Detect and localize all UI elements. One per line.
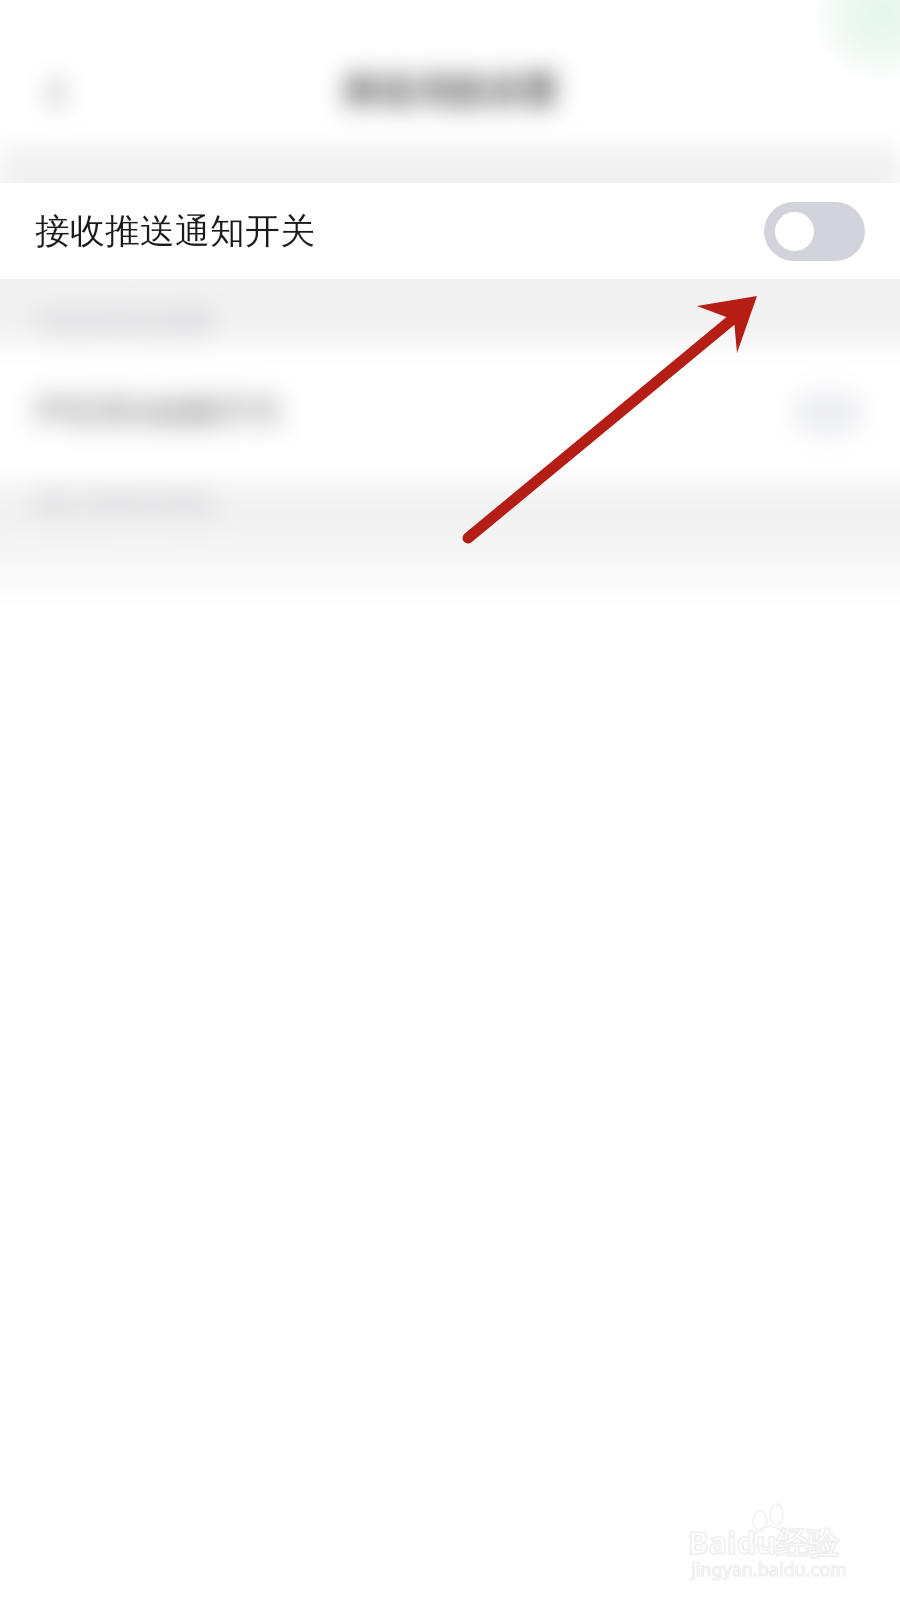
button[interactable]: 声音震动提醒开关 bbox=[0, 342, 900, 484]
button[interactable]: Back bbox=[31, 68, 81, 118]
staticText: 消息类型提醒 bbox=[34, 304, 214, 342]
staticText: 声音震动提醒开关 bbox=[34, 392, 282, 431]
staticText: 推送消息设置 bbox=[0, 68, 900, 113]
button[interactable]: 免打扰时间段 bbox=[0, 484, 900, 554]
button[interactable]: 接收推送通知开关 bbox=[0, 183, 900, 279]
staticText: 接收推送通知开关 bbox=[35, 209, 315, 253]
button[interactable]: 消息类型提醒 bbox=[0, 279, 900, 342]
button[interactable]: Receive push notifications toggle bbox=[764, 202, 865, 261]
staticText: Baidu经验 bbox=[688, 1521, 839, 1563]
button[interactable]: Sound and vibration toggle bbox=[794, 393, 862, 433]
staticText: 免打扰时间段 bbox=[34, 484, 214, 522]
staticText: jingyan.baidu.com bbox=[691, 1557, 847, 1582]
